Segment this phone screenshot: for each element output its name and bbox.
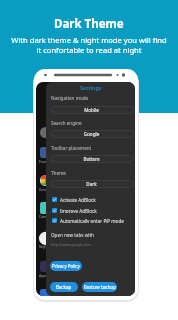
staticText: Night: [39, 244, 48, 249]
staticText: -: [53, 157, 55, 162]
staticText: Theme: [51, 170, 66, 176]
staticText: Settings: [80, 84, 102, 91]
staticText: Google: [55, 131, 128, 137]
staticText: -: [53, 182, 55, 187]
staticText: Improve AdBlock: [60, 208, 97, 213]
staticText: Restore backup: [84, 284, 116, 290]
staticText: Dark: [55, 181, 128, 187]
staticText: Google: [39, 187, 51, 192]
staticText: Privacy Policy: [52, 263, 80, 269]
staticText: Facebook: [39, 159, 55, 164]
button[interactable]: Privacy Policy: [50, 261, 82, 271]
staticText: -: [53, 108, 55, 113]
staticText: Mobile: [55, 107, 128, 113]
button[interactable]: Backup: [50, 282, 78, 292]
staticText: Open new tabs with: [51, 232, 94, 238]
button[interactable]: -: [50, 180, 134, 188]
staticText: Apps: [39, 273, 47, 278]
staticText: With dark theme & night mode you will fi…: [11, 35, 167, 55]
staticText: Camera: [39, 214, 52, 219]
staticText: Bottom: [55, 156, 128, 162]
staticText: Activate AdBlock: [60, 197, 96, 202]
staticText: Toolbar placement: [51, 145, 92, 151]
button[interactable]: -: [50, 130, 134, 138]
button[interactable]: Improve AdBlock: [52, 208, 132, 213]
staticText: Navigation mode: [51, 95, 89, 101]
button[interactable]: Activate AdBlock: [52, 197, 132, 202]
button[interactable]: Restore backup: [82, 282, 117, 292]
button[interactable]: Automatically enter PiP mode: [52, 218, 132, 223]
staticText: Automatically enter PiP mode: [60, 218, 124, 223]
staticText: Dark Theme: [54, 16, 124, 32]
button[interactable]: -: [50, 106, 134, 114]
staticText: Search engine: [51, 120, 82, 126]
staticText: http://www.google.com: [51, 242, 91, 247]
button[interactable]: -: [50, 155, 134, 163]
staticText: Backup: [56, 284, 72, 290]
staticText: -: [53, 132, 55, 137]
